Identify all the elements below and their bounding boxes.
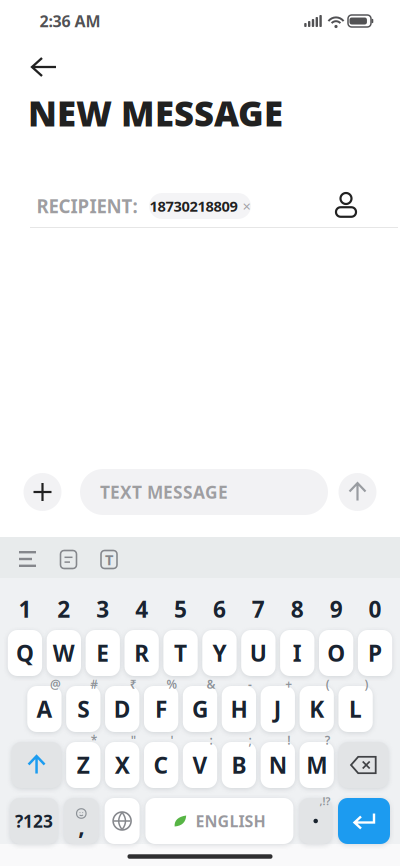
staticText: A: [36, 694, 52, 724]
staticText: G: [192, 694, 208, 724]
staticText: (: [326, 676, 330, 692]
button[interactable]: D: [105, 686, 139, 732]
button[interactable]: F: [144, 686, 178, 732]
staticText: +: [285, 676, 292, 692]
staticText: -: [248, 676, 252, 692]
button[interactable]: M: [299, 742, 334, 788]
button[interactable]: I: [280, 630, 314, 676]
button[interactable]: Clipboard: [53, 544, 83, 574]
staticText: 2: [57, 594, 70, 624]
staticText: X: [115, 750, 130, 780]
button[interactable]: J: [261, 686, 295, 732]
staticText: L: [349, 694, 362, 724]
staticText: 6: [213, 594, 226, 624]
staticText: ): [365, 676, 369, 692]
staticText: Z: [77, 750, 90, 780]
staticText: @: [50, 676, 61, 692]
staticText: NEW MESSAGE: [28, 90, 283, 136]
staticText: 0: [368, 594, 381, 624]
button[interactable]: 8: [280, 594, 314, 624]
button[interactable]: Z: [66, 742, 100, 788]
staticText: P: [368, 638, 382, 668]
button[interactable]: Delete: [338, 742, 388, 788]
staticText: N: [269, 750, 287, 780]
button[interactable]: Text editor: [94, 544, 124, 574]
button[interactable]: A: [27, 686, 61, 732]
button[interactable]: W: [47, 630, 81, 676]
button[interactable]: 1: [8, 594, 42, 624]
staticText: Q: [16, 638, 34, 668]
button[interactable]: P: [358, 630, 392, 676]
staticText: !: [287, 732, 290, 748]
button[interactable]: H: [222, 686, 256, 732]
staticText: 2:36 AM: [39, 10, 100, 32]
button[interactable]: ?123: [10, 798, 58, 844]
button[interactable]: 5: [163, 594, 198, 624]
staticText: E: [96, 638, 109, 668]
staticText: C: [154, 750, 169, 780]
button[interactable]: T: [163, 630, 198, 676]
staticText: M: [306, 750, 327, 780]
staticText: ;: [248, 732, 251, 748]
button[interactable]: Back: [22, 49, 66, 85]
button[interactable]: 0: [358, 594, 392, 624]
staticText: %: [167, 676, 178, 692]
staticText: V: [192, 750, 207, 780]
staticText: Y: [212, 638, 226, 668]
button[interactable]: Shift: [11, 742, 61, 788]
staticText: B: [231, 750, 246, 780]
button[interactable]: Comma: [64, 798, 99, 844]
button[interactable]: Send: [338, 473, 376, 511]
button[interactable]: O: [319, 630, 353, 676]
button[interactable]: 6: [202, 594, 237, 624]
button[interactable]: TEXT MESSAGE: [80, 469, 328, 515]
staticText: T: [105, 550, 113, 569]
button[interactable]: 2: [47, 594, 81, 624]
staticText: RECIPIENT:: [36, 194, 137, 218]
button[interactable]: Switch language: [105, 798, 140, 844]
staticText: 18730218809: [149, 196, 237, 216]
button[interactable]: Q: [8, 630, 42, 676]
staticText: S: [77, 694, 89, 724]
button[interactable]: 7: [241, 594, 275, 624]
button[interactable]: 9: [319, 594, 353, 624]
staticText: TEXT MESSAGE: [100, 480, 228, 503]
button[interactable]: V: [183, 742, 217, 788]
button[interactable]: Period: [299, 798, 332, 844]
staticText: R: [134, 638, 149, 668]
button[interactable]: K: [299, 686, 334, 732]
staticText: *: [91, 732, 98, 748]
button[interactable]: R: [124, 630, 159, 676]
staticText: D: [114, 694, 131, 724]
button[interactable]: N: [261, 742, 295, 788]
button[interactable]: Attach: [23, 473, 61, 511]
staticText: 3: [96, 594, 109, 624]
button[interactable]: Return: [338, 798, 390, 844]
button[interactable]: E: [86, 630, 120, 676]
button[interactable]: 18730218809: [149, 193, 251, 219]
staticText: ×: [242, 196, 250, 216]
button[interactable]: X: [105, 742, 139, 788]
button[interactable]: L: [338, 686, 373, 732]
staticText: 5: [174, 594, 187, 624]
staticText: K: [309, 694, 324, 724]
button[interactable]: Keyboard menu: [14, 544, 44, 574]
staticText: ': [171, 732, 174, 748]
staticText: 9: [330, 594, 343, 624]
button[interactable]: Space: [145, 798, 293, 844]
staticText: I: [293, 638, 302, 668]
staticText: 4: [135, 594, 148, 624]
button[interactable]: Choose contact: [326, 187, 366, 223]
staticText: &: [206, 676, 215, 692]
button[interactable]: G: [183, 686, 217, 732]
staticText: 8: [291, 594, 304, 624]
button[interactable]: Y: [202, 630, 237, 676]
button[interactable]: S: [66, 686, 100, 732]
button[interactable]: 3: [86, 594, 120, 624]
button[interactable]: B: [222, 742, 256, 788]
button[interactable]: U: [241, 630, 275, 676]
button[interactable]: C: [144, 742, 178, 788]
staticText: J: [274, 694, 282, 724]
button[interactable]: 4: [124, 594, 159, 624]
staticText: O: [327, 638, 345, 668]
